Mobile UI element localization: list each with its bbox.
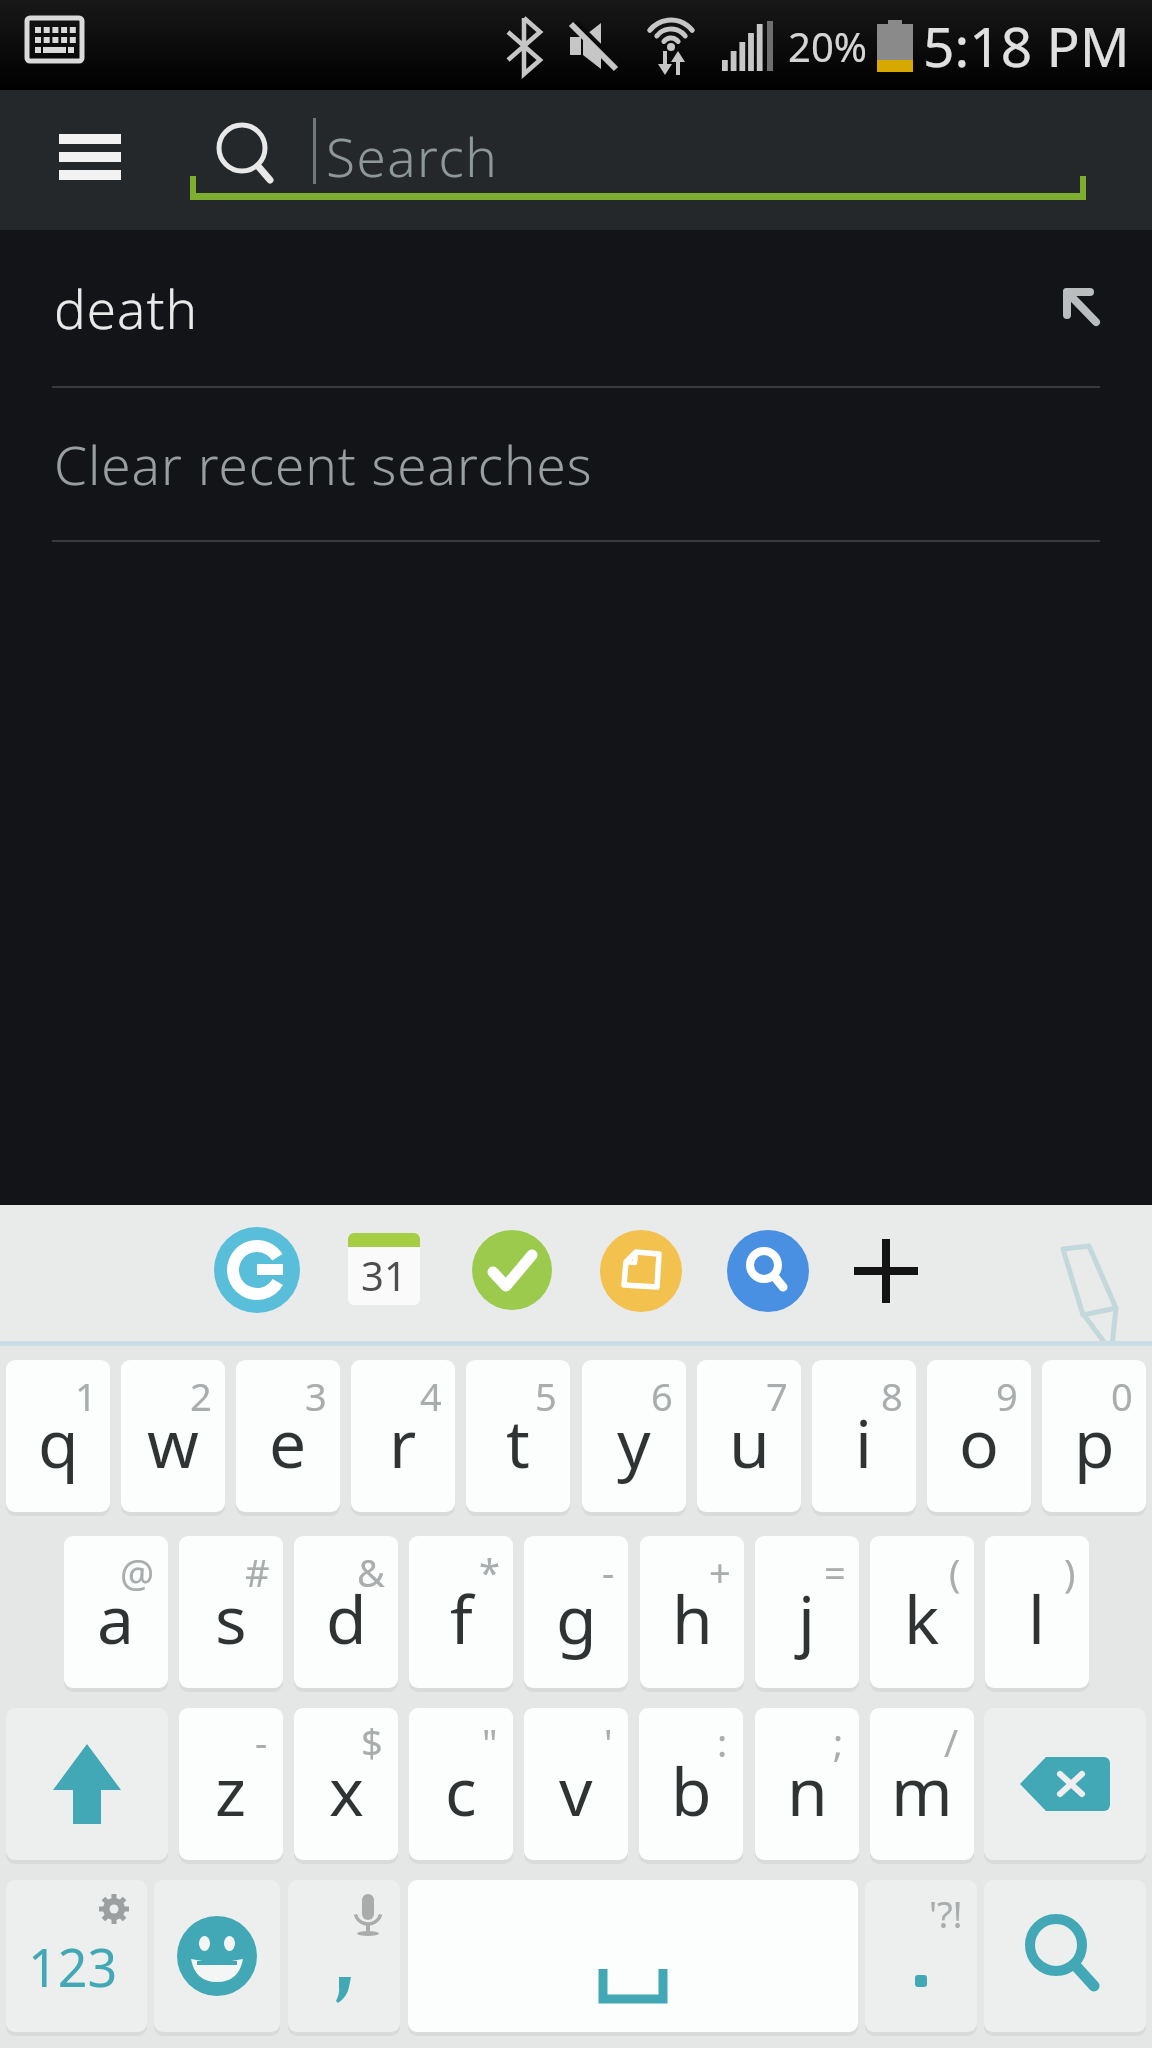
staticText: e bbox=[269, 1397, 307, 1487]
button[interactable]: t bbox=[466, 1360, 570, 1512]
staticText: 5 bbox=[535, 1370, 557, 1422]
staticText: d bbox=[326, 1573, 367, 1663]
button[interactable]: m bbox=[870, 1708, 974, 1860]
staticText: w bbox=[147, 1397, 199, 1487]
staticText: @ bbox=[120, 1546, 155, 1598]
staticText: * bbox=[479, 1546, 500, 1598]
staticText: 6 bbox=[651, 1370, 673, 1422]
button[interactable]: x bbox=[294, 1708, 398, 1860]
button[interactable] bbox=[190, 176, 1086, 200]
button[interactable]: c bbox=[409, 1708, 513, 1860]
staticText: 2 bbox=[190, 1370, 212, 1422]
button[interactable] bbox=[154, 1880, 280, 2032]
staticText: '?! bbox=[929, 1890, 963, 1939]
button[interactable]: y bbox=[582, 1360, 686, 1512]
button[interactable]: k bbox=[870, 1536, 974, 1688]
button[interactable]: i bbox=[812, 1360, 916, 1512]
staticText: " bbox=[482, 1716, 498, 1768]
staticText: + bbox=[709, 1546, 731, 1598]
button[interactable]: d bbox=[294, 1536, 398, 1688]
staticText: i bbox=[855, 1397, 873, 1487]
button[interactable] bbox=[600, 1230, 682, 1312]
button[interactable]: r bbox=[351, 1360, 455, 1512]
staticText: & bbox=[357, 1546, 385, 1598]
staticText: = bbox=[824, 1546, 846, 1598]
staticText: f bbox=[450, 1573, 473, 1663]
staticText: 7 bbox=[766, 1370, 788, 1422]
button[interactable] bbox=[727, 1230, 809, 1312]
button[interactable]: o bbox=[927, 1360, 1031, 1512]
staticText: u bbox=[729, 1397, 770, 1487]
button[interactable]: g bbox=[524, 1536, 628, 1688]
button[interactable]: Clear recent searches bbox=[0, 388, 1152, 540]
staticText: Search bbox=[326, 120, 499, 192]
button[interactable]: a bbox=[64, 1536, 168, 1688]
staticText: 3 bbox=[305, 1370, 327, 1422]
staticText: : bbox=[717, 1716, 728, 1768]
button[interactable]: q bbox=[6, 1360, 110, 1512]
staticText: ; bbox=[833, 1716, 844, 1768]
staticText: # bbox=[245, 1546, 270, 1598]
staticText: 31 bbox=[361, 1248, 407, 1302]
button[interactable] bbox=[40, 114, 140, 200]
staticText: y bbox=[617, 1397, 651, 1487]
button[interactable]: death bbox=[0, 230, 1152, 386]
button[interactable]: e bbox=[236, 1360, 340, 1512]
button[interactable]: n bbox=[755, 1708, 859, 1860]
staticText: m bbox=[891, 1745, 953, 1835]
staticText: 9 bbox=[996, 1370, 1018, 1422]
button[interactable]: b bbox=[639, 1708, 743, 1860]
button[interactable]: v bbox=[524, 1708, 628, 1860]
button[interactable]: 123 bbox=[6, 1880, 147, 2032]
button[interactable]: w bbox=[121, 1360, 225, 1512]
button[interactable]: 31 bbox=[348, 1233, 420, 1305]
staticText: 20% bbox=[788, 19, 867, 73]
staticText: k bbox=[904, 1573, 940, 1663]
staticText: death bbox=[54, 272, 198, 344]
staticText: s bbox=[215, 1573, 247, 1663]
button[interactable] bbox=[408, 1880, 858, 2032]
staticText: j bbox=[798, 1573, 816, 1663]
staticText: $ bbox=[361, 1716, 383, 1768]
staticText: r bbox=[389, 1397, 417, 1487]
staticText: 5:18 PM bbox=[923, 8, 1130, 83]
staticText: l bbox=[1028, 1573, 1046, 1663]
button[interactable]: s bbox=[179, 1536, 283, 1688]
button[interactable] bbox=[214, 1227, 300, 1313]
staticText: Clear recent searches bbox=[54, 428, 593, 500]
button[interactable]: p bbox=[1042, 1360, 1146, 1512]
button[interactable]: l bbox=[985, 1536, 1089, 1688]
button[interactable] bbox=[852, 1237, 920, 1305]
staticText: 0 bbox=[1111, 1370, 1133, 1422]
button[interactable] bbox=[984, 1880, 1146, 2032]
button[interactable] bbox=[6, 1708, 168, 1860]
button[interactable] bbox=[984, 1708, 1146, 1860]
staticText: q bbox=[38, 1397, 79, 1487]
staticText: g bbox=[556, 1573, 597, 1663]
button[interactable]: z bbox=[179, 1708, 283, 1860]
button[interactable]: u bbox=[697, 1360, 801, 1512]
button[interactable]: f bbox=[409, 1536, 513, 1688]
staticText: o bbox=[959, 1397, 999, 1487]
staticText: p bbox=[1074, 1397, 1115, 1487]
staticText: 4 bbox=[420, 1370, 442, 1422]
staticText: ) bbox=[1064, 1546, 1076, 1598]
button[interactable] bbox=[472, 1230, 552, 1310]
button[interactable]: h bbox=[640, 1536, 744, 1688]
staticText: n bbox=[787, 1745, 828, 1835]
staticText: h bbox=[672, 1573, 713, 1663]
button[interactable] bbox=[288, 1880, 400, 2032]
staticText: z bbox=[215, 1745, 247, 1835]
staticText: a bbox=[97, 1573, 135, 1663]
staticText: t bbox=[506, 1397, 530, 1487]
button[interactable]: '?! bbox=[865, 1880, 977, 2032]
staticText: 1 bbox=[75, 1370, 97, 1422]
staticText: x bbox=[329, 1745, 364, 1835]
staticText: - bbox=[602, 1546, 615, 1598]
staticText: 123 bbox=[28, 1931, 118, 2002]
staticText: v bbox=[559, 1745, 593, 1835]
staticText: b bbox=[671, 1745, 712, 1835]
staticText: / bbox=[944, 1716, 959, 1768]
staticText: ( bbox=[949, 1546, 961, 1598]
button[interactable]: j bbox=[755, 1536, 859, 1688]
